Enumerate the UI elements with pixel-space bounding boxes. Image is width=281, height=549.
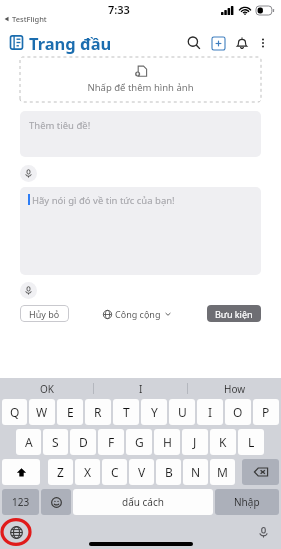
- button[interactable]: Shift: [2, 459, 40, 485]
- staticText: G: [135, 434, 144, 450]
- button[interactable]: I: [94, 378, 187, 399]
- button[interactable]: Nhấp để thêm hình ảnh: [20, 65, 261, 94]
- button[interactable]: Emoji: [41, 489, 71, 515]
- staticText: Bưu kiện: [215, 308, 253, 320]
- button[interactable]: Change keyboard language: [8, 524, 24, 540]
- button[interactable]: Search: [182, 31, 206, 55]
- button[interactable]: B: [156, 459, 181, 485]
- staticText: F: [108, 434, 115, 450]
- button[interactable]: K: [210, 429, 236, 455]
- staticText: TestFlight: [12, 14, 47, 24]
- button[interactable]: Y: [141, 399, 167, 425]
- staticText: Q: [10, 404, 20, 420]
- button[interactable]: O: [225, 399, 251, 425]
- staticText: D: [79, 434, 88, 450]
- button[interactable]: H: [154, 429, 180, 455]
- staticText: B: [165, 464, 173, 480]
- staticText: L: [248, 434, 255, 450]
- staticText: I: [139, 382, 143, 396]
- button[interactable]: R: [85, 399, 111, 425]
- button[interactable]: T: [113, 399, 139, 425]
- staticText: R: [94, 404, 102, 420]
- staticText: M: [217, 464, 228, 480]
- button[interactable]: M: [210, 459, 235, 485]
- button[interactable]: dấu cách: [73, 489, 213, 515]
- staticText: U: [178, 404, 187, 420]
- button[interactable]: Nhập: [215, 489, 279, 515]
- button[interactable]: V: [129, 459, 154, 485]
- button[interactable]: Hủy bỏ: [20, 305, 69, 322]
- staticText: Y: [151, 404, 158, 420]
- staticText: A: [25, 434, 33, 450]
- staticText: V: [138, 464, 146, 480]
- button[interactable]: 123: [2, 489, 39, 515]
- staticText: S: [52, 434, 59, 450]
- staticText: I: [208, 404, 213, 420]
- button[interactable]: P: [253, 399, 279, 425]
- button[interactable]: Voice input: [20, 282, 37, 299]
- staticText: K: [219, 434, 227, 450]
- button[interactable]: G: [126, 429, 152, 455]
- button[interactable]: OK: [0, 378, 93, 399]
- staticText: E: [67, 404, 74, 420]
- staticText: P: [262, 404, 270, 420]
- button[interactable]: More options: [254, 34, 272, 52]
- staticText: Nhập: [234, 495, 260, 509]
- button[interactable]: Q: [2, 399, 27, 425]
- button[interactable]: Công cộng: [101, 308, 174, 320]
- button[interactable]: Dictation: [255, 524, 271, 540]
- button[interactable]: S: [43, 429, 68, 455]
- button[interactable]: Bưu kiện: [207, 305, 261, 322]
- button[interactable]: Backspace: [242, 459, 279, 485]
- button[interactable]: U: [169, 399, 195, 425]
- staticText: N: [191, 464, 201, 480]
- staticText: Hãy nói gì đó về tin tức của bạn!: [32, 194, 175, 207]
- staticText: Z: [57, 464, 64, 480]
- button[interactable]: E: [57, 399, 83, 425]
- button[interactable]: A: [16, 429, 41, 455]
- staticText: X: [84, 464, 92, 480]
- button[interactable]: How: [188, 378, 281, 399]
- staticText: H: [163, 434, 172, 450]
- staticText: J: [193, 434, 197, 450]
- button[interactable]: N: [183, 459, 208, 485]
- staticText: Hủy bỏ: [29, 308, 60, 320]
- staticText: 123: [12, 495, 30, 509]
- button[interactable]: W: [29, 399, 55, 425]
- staticText: How: [224, 382, 246, 396]
- button[interactable]: J: [182, 429, 208, 455]
- staticText: Trang đầu: [29, 32, 112, 54]
- staticText: O: [233, 404, 243, 420]
- button[interactable]: D: [70, 429, 96, 455]
- staticText: Nhấp để thêm hình ảnh: [20, 81, 261, 94]
- button[interactable]: Hãy nói gì đó về tin tức của bạn!: [20, 187, 261, 275]
- button[interactable]: I: [197, 399, 223, 425]
- button[interactable]: L: [238, 429, 264, 455]
- staticText: T: [123, 404, 130, 420]
- staticText: Công cộng: [115, 308, 161, 320]
- staticText: dấu cách: [122, 495, 164, 509]
- staticText: C: [111, 464, 119, 480]
- button[interactable]: Add: [206, 31, 230, 55]
- staticText: 7:33: [108, 2, 130, 17]
- button[interactable]: Voice input: [20, 165, 37, 182]
- staticText: OK: [40, 382, 54, 396]
- staticText: Thêm tiêu đề!: [29, 119, 91, 132]
- button[interactable]: X: [75, 459, 100, 485]
- button[interactable]: Notifications: [230, 31, 254, 55]
- staticText: W: [36, 404, 48, 420]
- button[interactable]: F: [98, 429, 124, 455]
- button[interactable]: Thêm tiêu đề!: [20, 111, 261, 157]
- button[interactable]: C: [102, 459, 127, 485]
- button[interactable]: Z: [48, 459, 73, 485]
